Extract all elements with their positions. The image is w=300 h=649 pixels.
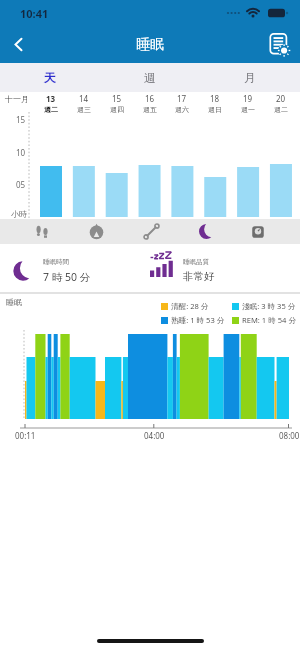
button[interactable]: 週 [100,63,200,92]
staticText: 淺眠: 3 時 35 分 [242,301,296,311]
staticText: 睡眠品質 [183,258,209,266]
staticText: 週二 [44,105,58,114]
staticText: REM: 1 時 54 分 [242,315,296,325]
staticText: 週一 [241,105,255,114]
staticText: 08:00 [279,430,300,441]
staticText: 15 [16,114,26,125]
staticText: 週 [144,70,156,85]
staticText: 小時 [11,209,27,219]
staticText: 月 [244,70,256,85]
staticText: 天 [44,70,56,85]
staticText: 睡眠時間 [43,258,69,266]
staticText: 20 [276,93,286,104]
button[interactable]: Steps [28,219,56,244]
staticText: 非常好 [183,270,215,283]
staticText: 10:41 [20,6,49,21]
button[interactable]: Sleep [192,219,220,244]
staticText: 7 時 50 分 [43,270,91,284]
button[interactable]: Back [0,26,40,63]
staticText: 睡眠 [6,297,22,307]
staticText: 05 [16,179,26,190]
staticText: 17 [177,93,187,104]
staticText: 13 [46,93,56,104]
staticText: 14 [79,93,89,104]
button[interactable]: Calories [82,219,110,244]
button[interactable]: 月 [200,63,300,92]
staticText: 熟睡: 1 時 53 分 [171,315,225,325]
button[interactable]: Sleep report [258,26,300,63]
button[interactable]: Heart rate [137,219,165,244]
staticText: 00:11 [15,430,36,441]
staticText: 16 [145,93,155,104]
staticText: 十一月 [5,94,29,104]
staticText: 04:00 [144,430,165,441]
staticText: 10 [16,147,26,158]
staticText: 週三 [77,105,91,114]
staticText: 18 [210,93,220,104]
button[interactable]: Weight [244,219,272,244]
staticText: 週日 [208,105,222,114]
staticText: 清醒: 28 分 [171,301,209,311]
staticText: 週六 [175,105,189,114]
staticText: 15 [112,93,122,104]
staticText: 週四 [110,105,124,114]
staticText: 睡眠 [136,36,164,54]
staticText: 週五 [143,105,157,114]
staticText: 週二 [274,105,288,114]
staticText: 19 [243,93,253,104]
button[interactable]: 天 [0,63,100,92]
